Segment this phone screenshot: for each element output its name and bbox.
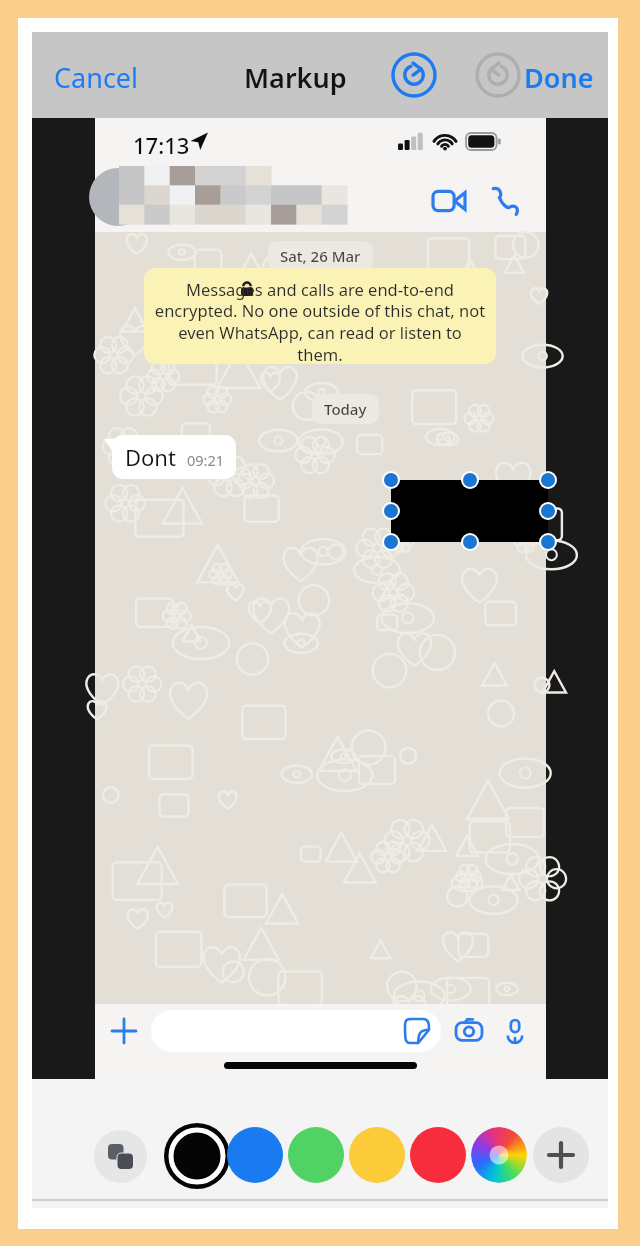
button[interactable]: Voice message <box>495 1011 535 1051</box>
button[interactable]: Dont <box>112 435 236 479</box>
button[interactable]: Blue colour <box>227 1127 283 1183</box>
button[interactable]: Attach <box>103 1010 145 1052</box>
button[interactable]: Redo <box>474 51 522 99</box>
button[interactable]: Shape style <box>94 1130 147 1183</box>
button[interactable]: Black colour, selected <box>164 1123 230 1189</box>
button[interactable]: Red colour <box>410 1127 466 1183</box>
button[interactable]: Cancel <box>50 53 143 102</box>
staticText: Messages and calls are end-to-end encryp… <box>154 278 486 364</box>
button[interactable]: Stickers <box>403 1017 431 1045</box>
staticText: Markup <box>244 59 347 96</box>
staticText: Done <box>524 59 594 96</box>
button[interactable] <box>89 168 147 226</box>
staticText: Dont <box>125 442 176 472</box>
staticText: Sat, 26 Mar <box>280 246 361 266</box>
button[interactable]: Undo <box>390 51 438 99</box>
staticText: Today <box>324 399 367 419</box>
button[interactable] <box>119 166 347 224</box>
button[interactable]: Custom colour <box>471 1127 527 1183</box>
staticText: Cancel <box>54 59 139 96</box>
button[interactable]: Today <box>312 394 379 424</box>
staticText: 17:13 <box>133 130 190 160</box>
button[interactable]: Done <box>520 53 598 102</box>
button[interactable]: Stickers <box>151 1010 441 1052</box>
staticText: 09:21 <box>187 450 225 470</box>
button[interactable]: Video call <box>428 180 470 222</box>
button[interactable]: Add colour <box>533 1127 589 1183</box>
button[interactable]: Redaction shape <box>391 480 548 542</box>
button[interactable]: Green colour <box>288 1127 344 1183</box>
button[interactable]: Sat, 26 Mar <box>268 241 373 271</box>
button[interactable]: Messages and calls are end-to-end encryp… <box>144 268 496 364</box>
button[interactable]: Voice call <box>484 180 526 222</box>
button[interactable]: Camera <box>449 1011 489 1051</box>
button[interactable]: Yellow colour <box>349 1127 405 1183</box>
